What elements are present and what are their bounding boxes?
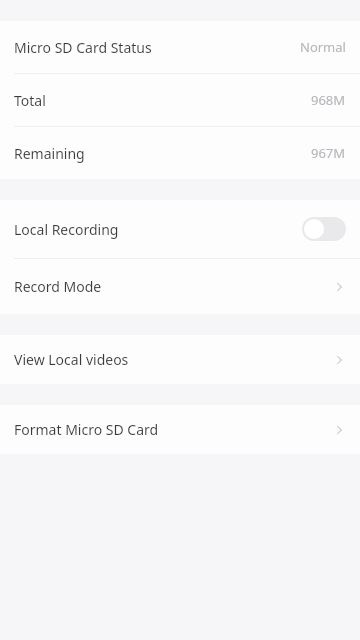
staticText: Total	[14, 91, 46, 110]
button[interactable]: Micro SD Card Status	[0, 21, 360, 73]
button[interactable]: Format Micro SD Card	[0, 405, 360, 454]
button[interactable]: Local Recording	[0, 200, 360, 258]
staticText: View Local videos	[14, 350, 129, 369]
staticText: Local Recording	[14, 220, 119, 239]
button[interactable]: Record Mode	[0, 259, 360, 314]
staticText: Record Mode	[14, 277, 102, 296]
button[interactable]: View Local videos	[0, 335, 360, 384]
button[interactable]: Local Recording toggle	[302, 217, 346, 241]
staticText: Micro SD Card Status	[14, 38, 152, 57]
staticText: 967M	[311, 144, 346, 162]
button[interactable]: Remaining	[0, 127, 360, 179]
staticText: 968M	[311, 91, 346, 109]
staticText: Normal	[300, 38, 346, 56]
staticText: Format Micro SD Card	[14, 420, 159, 439]
button[interactable]: Total	[0, 74, 360, 126]
staticText: Remaining	[14, 144, 85, 163]
